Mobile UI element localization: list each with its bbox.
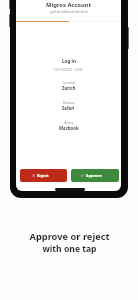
staticText: Macbook	[59, 125, 79, 131]
staticText: Browser	[63, 101, 75, 105]
staticText: Zurich	[62, 85, 76, 91]
staticText: 13/11/2023 12:00	[54, 67, 83, 72]
staticText: Reject	[37, 173, 49, 178]
staticText: Approve	[86, 173, 102, 178]
staticText: gottlieb.duftweider@mail.ch	[50, 10, 88, 14]
button[interactable]: Approve	[71, 169, 119, 182]
staticText: Log in	[62, 58, 76, 64]
staticText: Safari	[62, 105, 75, 111]
staticText: Location	[63, 81, 76, 85]
staticText: Device	[64, 121, 74, 125]
staticText: Migros Account	[46, 1, 92, 9]
staticText: with one tap	[42, 243, 97, 255]
staticText: Approve or reject	[29, 230, 110, 243]
button[interactable]: Reject	[20, 169, 67, 182]
